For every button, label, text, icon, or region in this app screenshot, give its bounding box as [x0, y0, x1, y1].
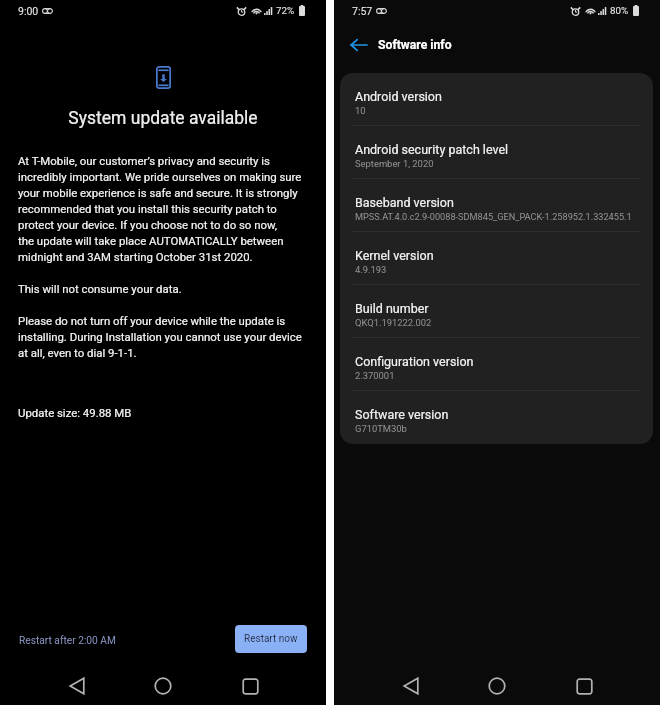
- staticText: Update size: 49.88 MB: [18, 406, 132, 419]
- staticText: Software info: [378, 38, 452, 52]
- button[interactable]: Restart now: [235, 625, 307, 653]
- staticText: Build number: [355, 301, 429, 316]
- staticText: At T-Mobile, our customer’s privacy and …: [18, 154, 302, 359]
- staticText: QKQ1.191222.002: [355, 317, 432, 328]
- staticText: Kernel version: [355, 248, 434, 263]
- button[interactable]: Configuration version: [340, 338, 653, 391]
- staticText: 72%: [276, 5, 295, 16]
- staticText: 80%: [610, 5, 629, 16]
- button[interactable]: Android version: [340, 73, 653, 126]
- staticText: September 1, 2020: [355, 158, 434, 169]
- staticText: Restart now: [244, 633, 298, 645]
- other: Back: [350, 38, 367, 52]
- button[interactable]: Home: [141, 667, 185, 705]
- button[interactable]: Android security patch level: [340, 126, 653, 179]
- staticText: Baseband version: [355, 195, 454, 210]
- staticText: Configuration version: [355, 354, 474, 369]
- button[interactable]: Recents: [228, 667, 272, 705]
- staticText: Software version: [355, 407, 449, 422]
- button[interactable]: Kernel version: [340, 232, 653, 285]
- button[interactable]: Back: [55, 667, 99, 705]
- button[interactable]: Home: [475, 667, 519, 705]
- staticText: MPSS.AT.4.0.c2.9-00088-SDM845_GEN_PACK-1…: [355, 211, 632, 222]
- staticText: Restart after 2:00 AM: [19, 635, 116, 647]
- button[interactable]: Software version: [340, 391, 653, 444]
- button[interactable]: Restart after 2:00 AM: [13, 630, 122, 652]
- button[interactable]: Back: [389, 667, 433, 705]
- staticText: System update available: [0, 108, 326, 129]
- staticText: Android version: [355, 89, 442, 104]
- button[interactable]: Baseband version: [340, 179, 653, 232]
- button[interactable]: Build number: [340, 285, 653, 338]
- staticText: 2.370001: [355, 370, 395, 381]
- button[interactable]: Back: [334, 27, 660, 62]
- staticText: Android security patch level: [355, 142, 509, 157]
- staticText: 9:00: [18, 5, 39, 17]
- button[interactable]: Recents: [562, 667, 606, 705]
- staticText: 7:57: [352, 5, 373, 17]
- staticText: 4.9.193: [355, 264, 387, 275]
- staticText: G710TM30b: [355, 423, 407, 434]
- staticText: 10: [355, 105, 366, 116]
